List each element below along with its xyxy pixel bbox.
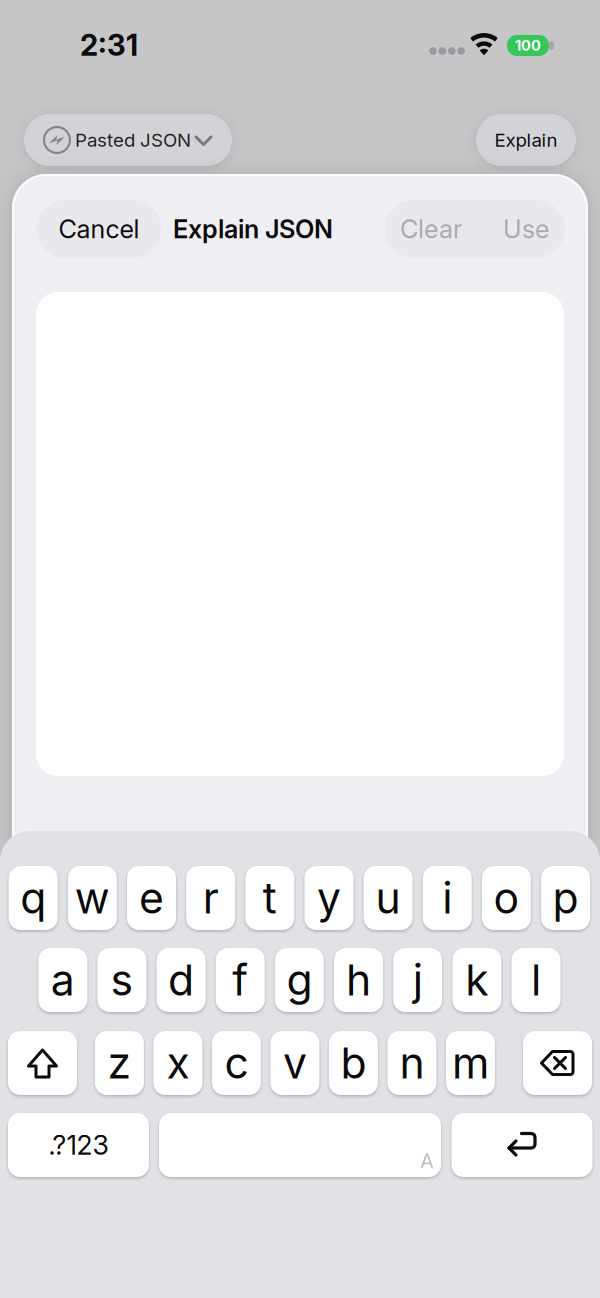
button[interactable]: g	[275, 948, 324, 1012]
staticText: t	[263, 873, 277, 923]
button[interactable]: v	[270, 1031, 319, 1095]
button[interactable]: .?123	[8, 1113, 149, 1177]
staticText: v	[283, 1038, 307, 1088]
staticText: k	[465, 955, 488, 1005]
staticText: Pasted JSON	[75, 129, 191, 151]
staticText: i	[442, 873, 452, 923]
staticText: u	[376, 873, 401, 923]
button[interactable]: s	[97, 948, 146, 1012]
button[interactable]: Use	[486, 200, 566, 258]
button[interactable]: u	[364, 866, 413, 930]
button[interactable]: Space	[159, 1113, 441, 1177]
button[interactable]: Delete	[523, 1031, 592, 1095]
staticText: y	[317, 873, 341, 923]
button[interactable]: t	[245, 866, 294, 930]
button[interactable]: Clear	[386, 200, 476, 258]
staticText: e	[139, 873, 164, 923]
staticText: Explain	[494, 129, 557, 151]
staticText: h	[346, 955, 371, 1005]
button[interactable]: j	[393, 948, 442, 1012]
button[interactable]: i	[423, 866, 472, 930]
staticText: f	[232, 955, 248, 1005]
staticText: b	[340, 1038, 366, 1088]
button[interactable]: r	[186, 866, 235, 930]
staticText: p	[553, 873, 579, 923]
button[interactable]: c	[212, 1031, 261, 1095]
staticText: A	[420, 1149, 434, 1173]
button[interactable]: b	[329, 1031, 378, 1095]
staticText: Explain JSON	[173, 214, 333, 244]
button[interactable]: q	[9, 866, 58, 930]
staticText: r	[203, 873, 219, 923]
staticText: g	[286, 955, 312, 1005]
button[interactable]: d	[157, 948, 206, 1012]
staticText: Cancel	[58, 214, 139, 244]
button[interactable]: Shift	[8, 1031, 77, 1095]
staticText: l	[531, 955, 541, 1005]
staticText: a	[51, 955, 75, 1005]
staticText: o	[493, 873, 519, 923]
staticText: 100	[515, 37, 541, 54]
button[interactable]: x	[153, 1031, 202, 1095]
button[interactable]: o	[482, 866, 531, 930]
button[interactable]: e	[127, 866, 176, 930]
button[interactable]: k	[452, 948, 501, 1012]
staticText: m	[452, 1038, 489, 1088]
staticText: .?123	[48, 1129, 108, 1161]
staticText: Clear	[400, 214, 462, 244]
button[interactable]: y	[304, 866, 353, 930]
staticText: c	[224, 1038, 248, 1088]
staticText: Use	[503, 214, 549, 244]
button[interactable]: Cancel	[36, 200, 161, 258]
staticText: q	[20, 873, 46, 923]
staticText: w	[75, 873, 110, 923]
staticText: d	[168, 955, 194, 1005]
staticText: z	[107, 1038, 131, 1088]
button[interactable]: m	[446, 1031, 495, 1095]
staticText: n	[399, 1038, 424, 1088]
button[interactable]: h	[334, 948, 383, 1012]
button[interactable]: p	[541, 866, 590, 930]
staticText: x	[166, 1038, 189, 1088]
button[interactable]: l	[511, 948, 560, 1012]
button[interactable]: Return	[451, 1113, 592, 1177]
staticText: s	[110, 955, 133, 1005]
button[interactable]: Pasted JSON	[24, 114, 232, 166]
button[interactable]: z	[95, 1031, 144, 1095]
staticText: j	[413, 955, 423, 1005]
button[interactable]: w	[68, 866, 117, 930]
button[interactable]: n	[387, 1031, 436, 1095]
button[interactable]: Explain	[476, 114, 576, 166]
button[interactable]: f	[216, 948, 265, 1012]
button[interactable]: a	[38, 948, 87, 1012]
staticText: 2:31	[80, 28, 138, 62]
